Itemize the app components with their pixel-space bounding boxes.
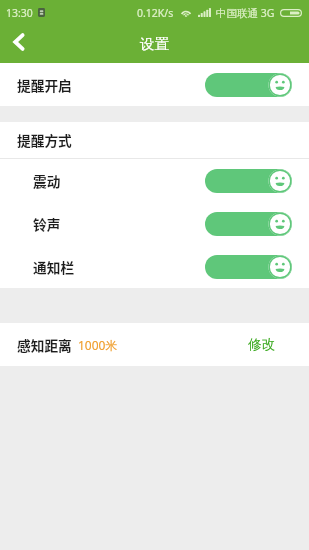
button[interactable]: Toggle <box>205 212 292 236</box>
staticText: 中国联通 3G <box>216 6 275 20</box>
staticText: 通知栏 <box>33 257 75 277</box>
button[interactable]: 震动 <box>0 159 309 202</box>
button[interactable]: Toggle <box>205 73 292 97</box>
button[interactable]: 铃声 <box>0 202 309 245</box>
button[interactable]: Back <box>0 25 38 63</box>
button[interactable]: 通知栏 <box>0 245 309 288</box>
staticText: 设置 <box>140 35 169 53</box>
staticText: 感知距离 <box>17 335 72 355</box>
staticText: 震动 <box>33 171 61 191</box>
staticText: 提醒方式 <box>17 130 72 150</box>
button[interactable]: 感知距离 <box>0 335 238 355</box>
staticText: 0.12K/s <box>137 6 174 20</box>
button[interactable]: Toggle <box>205 169 292 193</box>
staticText: 提醒开启 <box>17 75 72 95</box>
button[interactable]: 提醒开启 <box>0 63 309 106</box>
staticText: 修改 <box>248 336 276 353</box>
staticText: 1000米 <box>78 337 118 353</box>
button[interactable]: 修改 <box>238 336 309 353</box>
button[interactable]: Toggle <box>205 255 292 279</box>
staticText: 铃声 <box>33 214 61 234</box>
staticText: 13:30 <box>6 6 33 20</box>
